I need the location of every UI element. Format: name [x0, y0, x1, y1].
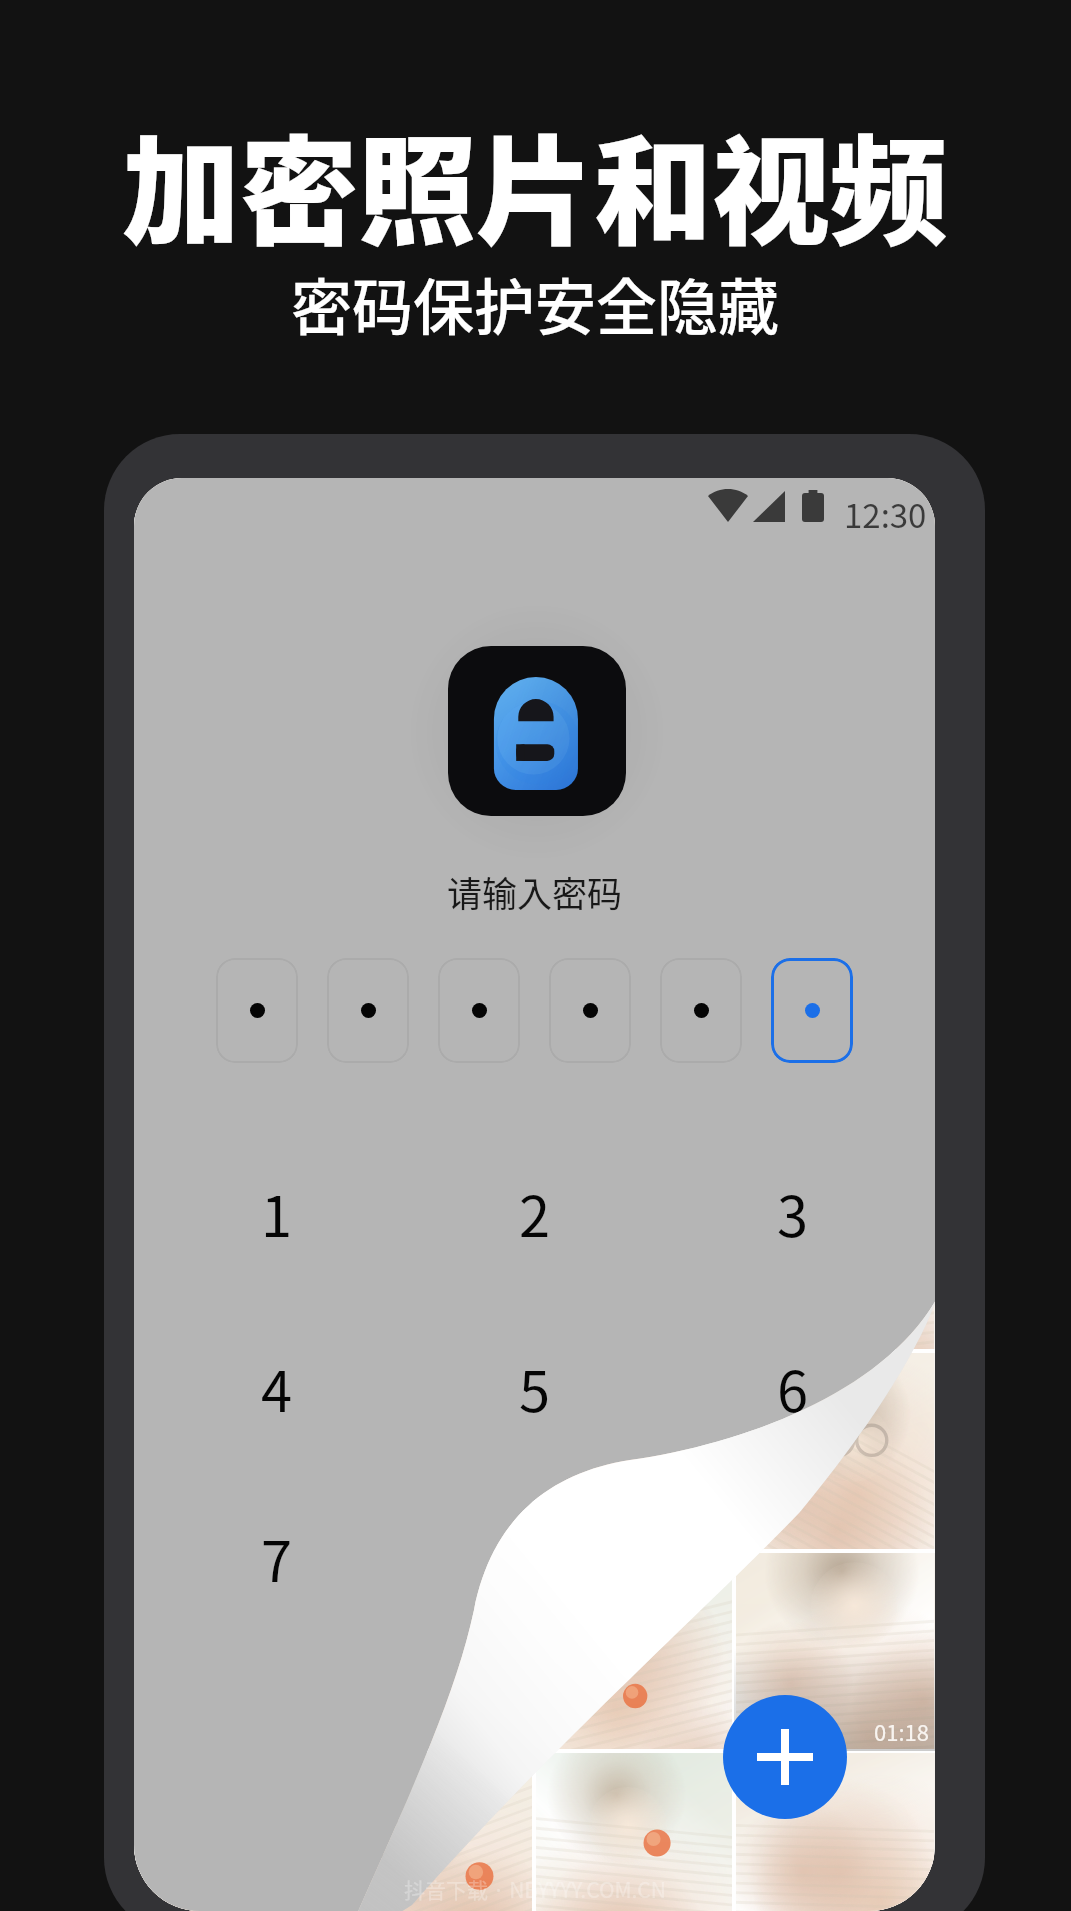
staticText: 1 [261, 1172, 293, 1253]
button[interactable]: PIN digit [660, 958, 742, 1063]
button[interactable]: 8 [449, 1491, 621, 1623]
button[interactable]: 6 [707, 1321, 879, 1453]
button[interactable]: 4 [191, 1321, 363, 1453]
button[interactable]: 2 [449, 1146, 621, 1278]
staticText: 5 [519, 1347, 551, 1428]
staticText: 密码保护安全隐藏 [291, 259, 780, 347]
staticText: 6 [777, 1347, 809, 1428]
staticText: 12:30 [844, 490, 927, 538]
staticText: 抖音下载 · NBYYYY.COM.CN [404, 1874, 666, 1904]
button[interactable]: PIN digit [771, 958, 853, 1063]
button[interactable]: PIN digit [327, 958, 409, 1063]
staticText: 加密照片和视频 [122, 98, 949, 269]
button[interactable]: PIN digit [438, 958, 520, 1063]
button[interactable]: PIN digit [549, 958, 631, 1063]
staticText: 7 [261, 1517, 293, 1598]
staticText: 请输入密码 [447, 866, 623, 917]
button[interactable]: 5 [449, 1321, 621, 1453]
staticText: 3 [777, 1172, 809, 1253]
button[interactable]: PIN digit [216, 958, 298, 1063]
staticText: 2 [519, 1172, 551, 1253]
button[interactable]: Add [723, 1695, 847, 1819]
staticText: 9 [777, 1517, 809, 1598]
staticText: 01:18 [874, 1715, 929, 1747]
button[interactable]: 7 [191, 1491, 363, 1623]
button[interactable]: 3 [707, 1146, 879, 1278]
button[interactable]: 9 [707, 1491, 879, 1623]
staticText: 4 [261, 1347, 293, 1428]
button[interactable]: 1 [191, 1146, 363, 1278]
